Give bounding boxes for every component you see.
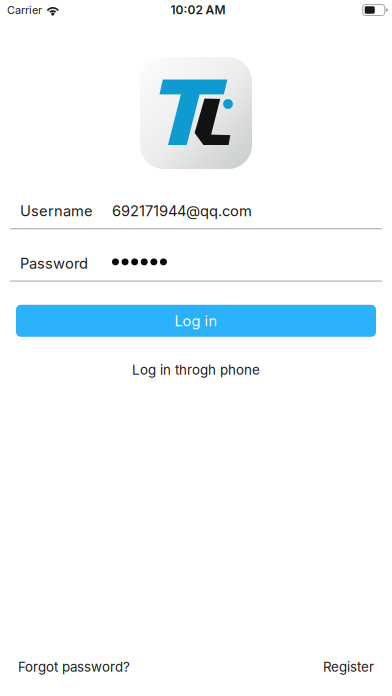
staticText: 692171944@qq.com	[112, 202, 252, 220]
staticText: 10:02 AM	[170, 3, 225, 17]
staticText: Log in throgh phone	[132, 362, 260, 378]
staticText: Forgot password?	[18, 659, 130, 675]
button[interactable]: Forgot password?	[18, 659, 130, 675]
button[interactable]: Log in	[16, 305, 376, 337]
staticText: Carrier	[7, 3, 42, 17]
staticText: Register	[323, 659, 374, 675]
button[interactable]: Register	[323, 659, 374, 675]
staticText: Username	[20, 202, 93, 220]
button[interactable]: Log in throgh phone	[132, 362, 260, 378]
staticText: Log in	[174, 312, 217, 330]
staticText: Password	[20, 254, 88, 272]
